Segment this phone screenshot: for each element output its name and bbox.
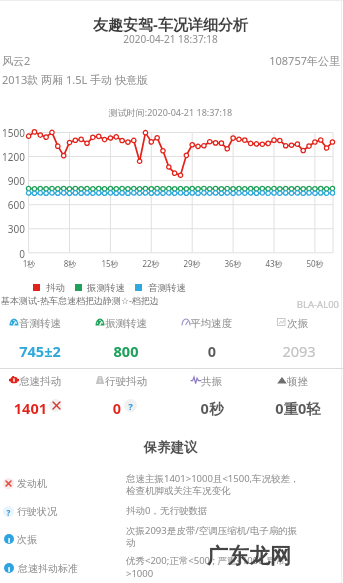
staticText: 怠速抖动 — [19, 375, 61, 388]
staticText: 动 — [126, 537, 136, 549]
staticText: 次振2093是皮带/空调压缩机/电子扇的振 — [126, 524, 298, 537]
staticText: 风云2 — [2, 53, 31, 68]
staticText: 800 — [83, 341, 169, 361]
staticText: 0 — [0, 398, 121, 418]
staticText: 1500 — [0, 126, 25, 140]
staticText: 900 — [0, 174, 25, 188]
staticText: 优秀<200;正常<500 ; 严重<1000,异常 — [126, 554, 286, 567]
staticText: 8秒 — [54, 258, 86, 269]
staticText: 音测转速 — [148, 282, 186, 294]
staticText: 50秒 — [299, 258, 331, 269]
staticText: 振测转速 — [105, 317, 147, 330]
staticText: 共振 — [201, 375, 222, 388]
staticText: 108757年公里 — [0, 53, 340, 68]
staticText: 600 — [0, 198, 25, 212]
staticText: 怠速主振1401>1000且<1500,车况较差， — [126, 472, 300, 485]
staticText: 基本测试-热车怠速档把边静测☆-档把边 — [1, 294, 159, 306]
staticText: 行驶状况 — [17, 505, 57, 518]
staticText: 平均速度 — [190, 317, 232, 330]
staticText: 29秒 — [176, 258, 208, 269]
staticText: 测试时间:2020-04-21 18:37:18 — [0, 106, 341, 118]
staticText: 0秒 — [169, 398, 255, 418]
staticText: 300 — [0, 222, 25, 236]
staticText: i — [4, 535, 14, 545]
staticText: 音测转速 — [19, 317, 61, 330]
staticText: 顿挫 — [287, 375, 308, 388]
staticText: 43秒 — [258, 258, 290, 269]
staticText: 1秒 — [13, 258, 45, 269]
staticText: 1401 — [0, 398, 47, 418]
staticText: 2013款 两厢 1.5L 手动 快意版 — [2, 72, 148, 87]
staticText: 友趣安驾-车况详细分析 — [0, 14, 341, 34]
staticText: ? — [3, 507, 14, 518]
staticText: 发动机 — [17, 477, 47, 490]
staticText: 检查机脚或关注车况变化 — [126, 485, 231, 497]
staticText: 抖动0，无行驶数据 — [126, 504, 208, 517]
staticText: 15秒 — [94, 258, 126, 269]
staticText: 0重0轻 — [255, 398, 341, 418]
staticText: 次振 — [17, 533, 37, 546]
staticText: 怠速抖动标准 — [18, 562, 78, 575]
staticText: 广东龙网 — [207, 543, 291, 569]
staticText: BLA-AL00 — [0, 298, 339, 311]
staticText: 次振 — [287, 317, 308, 330]
staticText: 保养建议 — [0, 439, 341, 456]
staticText: 22秒 — [135, 258, 167, 269]
staticText: 1200 — [0, 150, 25, 164]
staticText: 2020-04-21 18:37:18 — [0, 32, 341, 46]
staticText: >1000 — [126, 567, 154, 580]
staticText: 抖动 — [46, 282, 65, 294]
staticText: 0 — [169, 341, 255, 361]
staticText: 745±2 — [0, 341, 83, 361]
staticText: 0 — [0, 247, 25, 261]
staticText: 36秒 — [217, 258, 249, 269]
staticText: 行驶抖动 — [105, 375, 147, 388]
staticText: 2093 — [256, 341, 342, 361]
staticText: i — [4, 564, 14, 574]
staticText: ? — [124, 400, 137, 413]
staticText: 振测转速 — [87, 282, 125, 294]
